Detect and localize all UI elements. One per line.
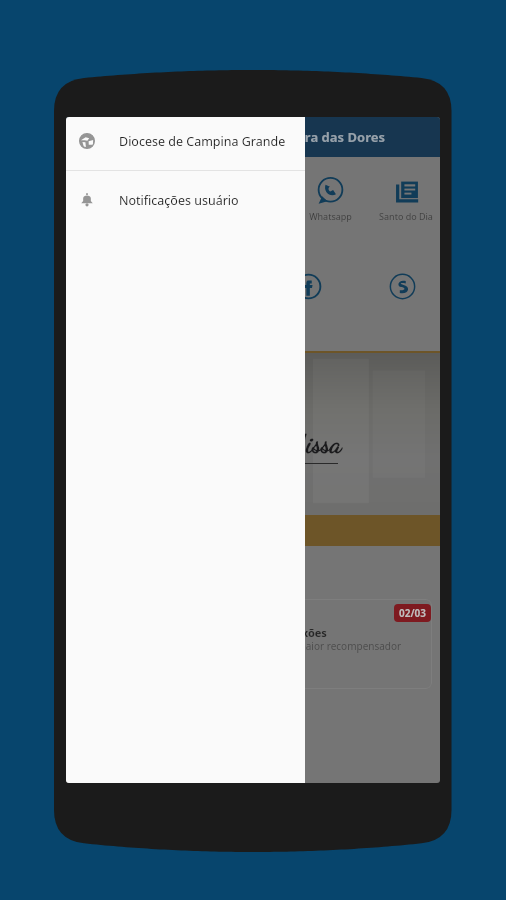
staticText: 02/03 [399,606,427,620]
button[interactable]: Missa banner [66,351,440,546]
staticText: Diocese de Campina Grande [119,133,286,150]
button[interactable]: Whatsapp [293,177,368,222]
button[interactable]: App shortcut [261,273,355,300]
staticText: Santo do Dia [379,210,433,222]
button[interactable]: Santo do Dia [368,177,440,222]
staticText: Notificações usuário [119,192,239,209]
button[interactable]: Diocese de Campina Grande [66,117,305,169]
staticText: Missa [287,428,342,459]
staticText: Nossa Senhora das Dores [222,128,385,146]
button[interactable]: Reflexões [73,599,432,689]
button[interactable]: Ao Vivo [69,177,143,222]
staticText: Whatsapp [309,210,352,222]
button[interactable]: App shortcut [355,273,440,300]
button[interactable]: Open navigation drawer [80,127,100,147]
staticText: Reflexões [274,625,327,640]
staticText: Deus é o maior recompensador [253,639,402,653]
button[interactable]: Notificações usuário [66,171,305,233]
button[interactable]: Avisos [218,177,293,222]
button[interactable]: Rádio [143,177,218,222]
